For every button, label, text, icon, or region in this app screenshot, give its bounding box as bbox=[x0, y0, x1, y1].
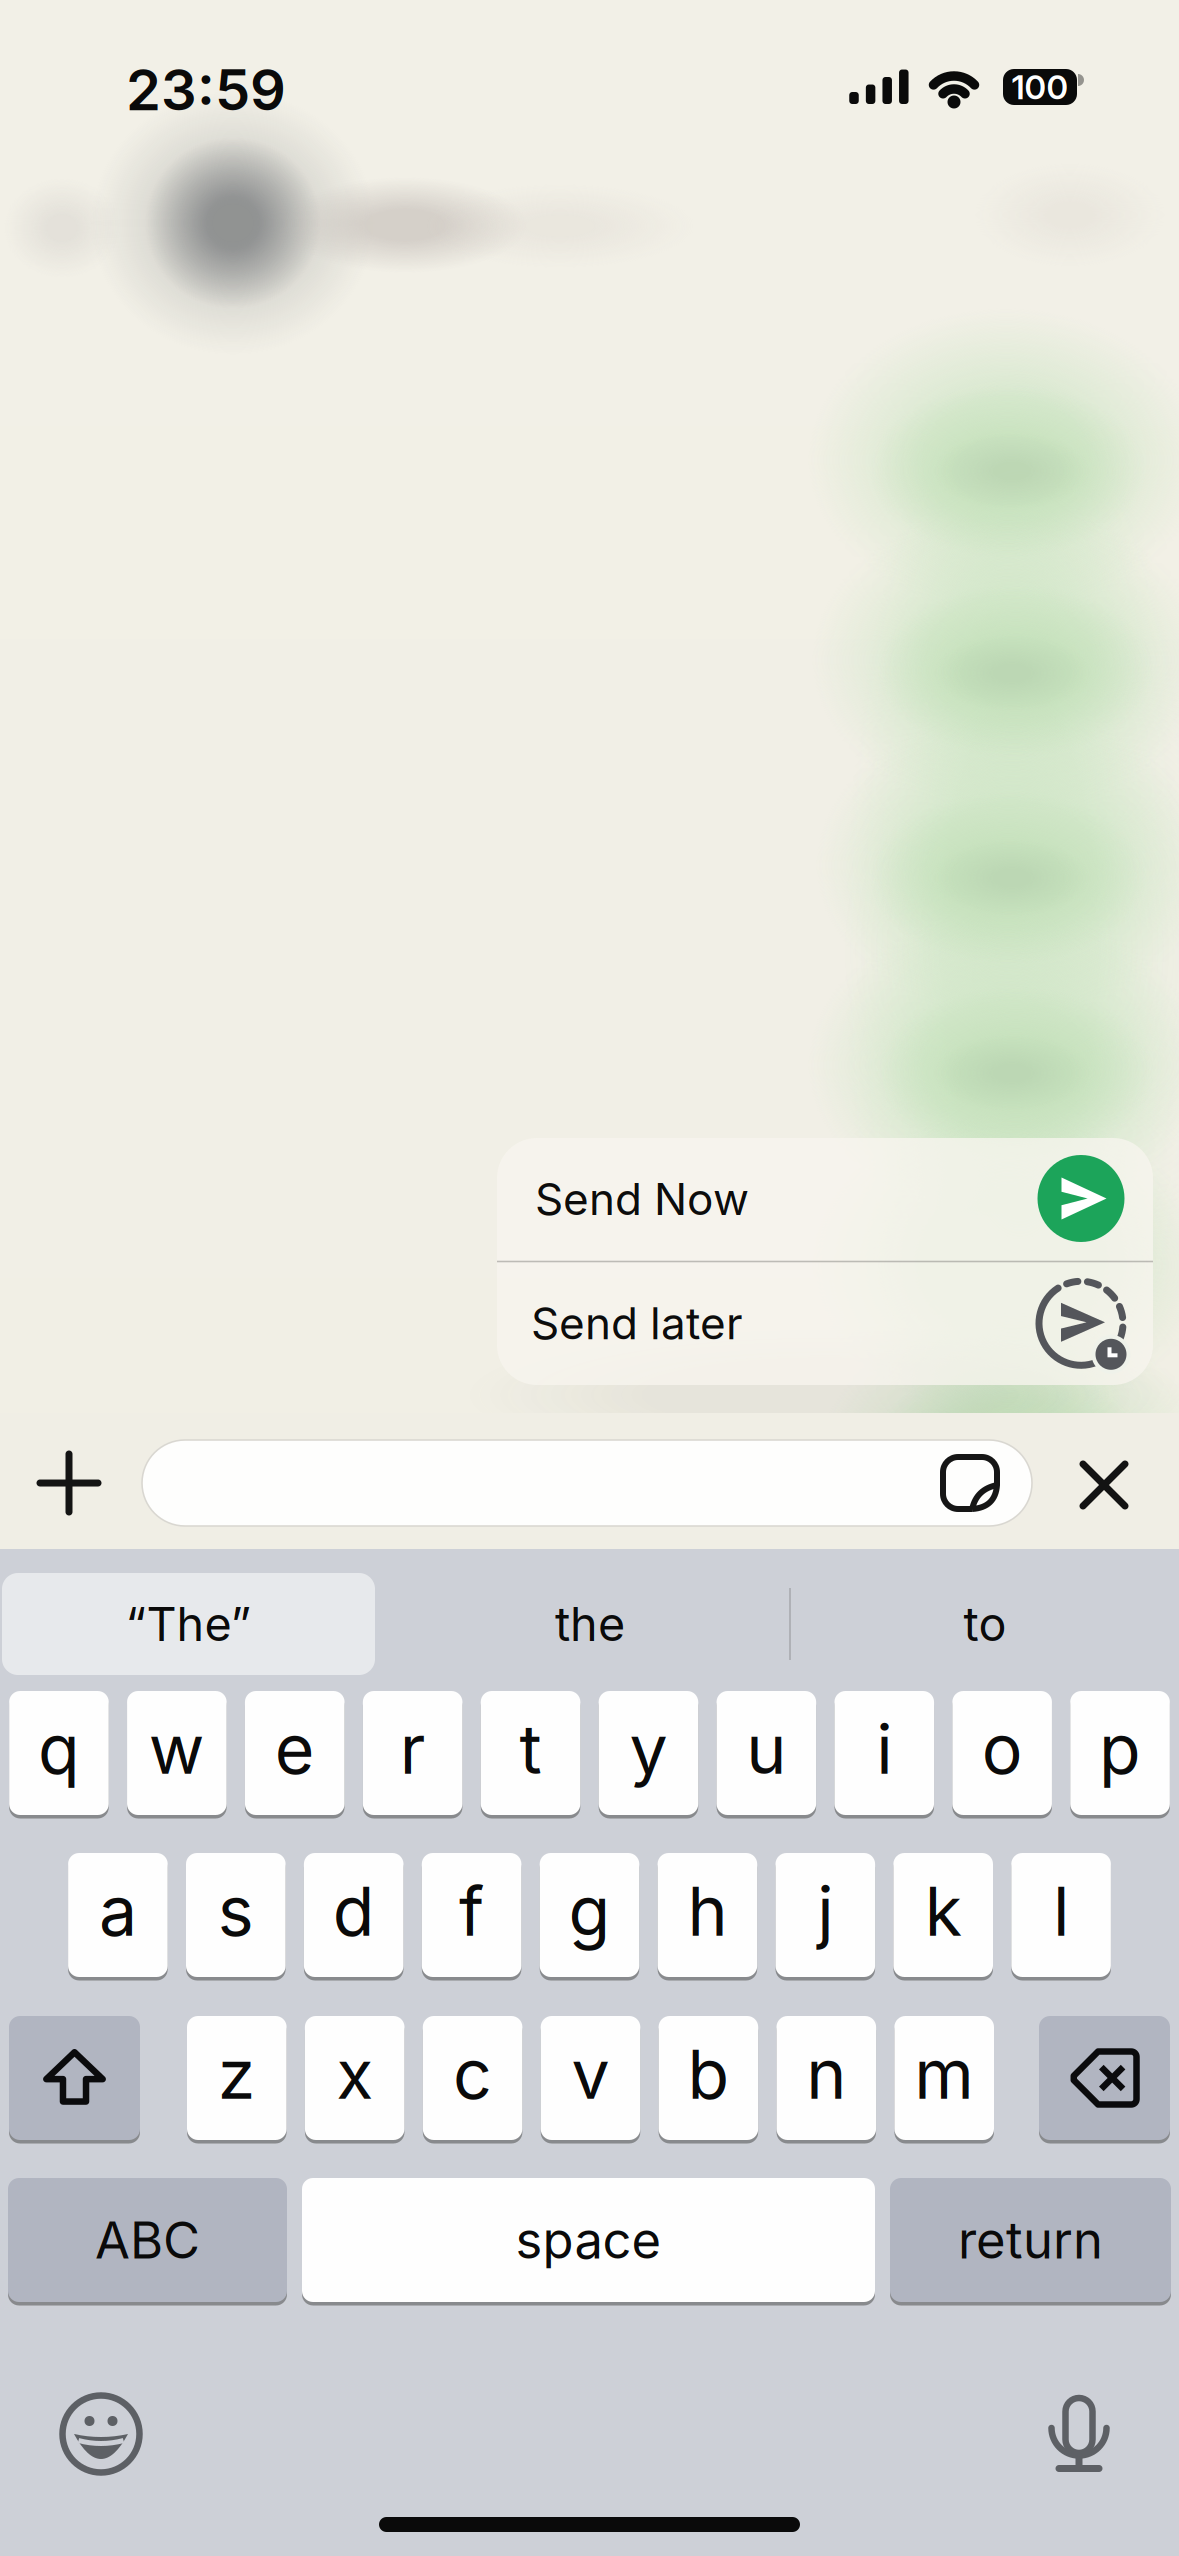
button[interactable]: d bbox=[304, 1853, 403, 1977]
button[interactable]: z bbox=[187, 2016, 287, 2140]
staticText: a bbox=[99, 1871, 137, 1951]
staticText: f bbox=[459, 1871, 484, 1951]
staticText: o bbox=[982, 1709, 1023, 1789]
staticText: 100 bbox=[1011, 67, 1068, 107]
staticText: t bbox=[519, 1709, 541, 1789]
staticText: s bbox=[218, 1871, 254, 1951]
staticText: j bbox=[817, 1871, 833, 1951]
button[interactable]: x bbox=[305, 2016, 404, 2140]
staticText: z bbox=[218, 2034, 256, 2114]
button[interactable]: o bbox=[952, 1691, 1052, 1815]
button[interactable]: r bbox=[363, 1691, 462, 1815]
button[interactable]: t bbox=[481, 1691, 580, 1815]
staticText: Send Now bbox=[535, 1173, 749, 1225]
button[interactable]: b bbox=[659, 2016, 758, 2140]
staticText: m bbox=[914, 2034, 974, 2114]
staticText: e bbox=[275, 1709, 315, 1789]
button[interactable]: u bbox=[716, 1691, 816, 1815]
button[interactable] bbox=[943, 1457, 997, 1509]
button[interactable]: n bbox=[776, 2016, 876, 2140]
button[interactable]: Send later bbox=[497, 1262, 1153, 1385]
button[interactable]: a bbox=[68, 1853, 168, 1977]
button[interactable]: the bbox=[440, 1573, 740, 1675]
button[interactable]: y bbox=[599, 1691, 698, 1815]
staticText: c bbox=[453, 2034, 492, 2114]
staticText: i bbox=[876, 1709, 892, 1789]
button[interactable]: k bbox=[893, 1853, 993, 1977]
staticText: d bbox=[333, 1871, 375, 1951]
button[interactable]: w bbox=[127, 1691, 227, 1815]
staticText: 23:59 bbox=[126, 57, 286, 123]
button[interactable]: l bbox=[1011, 1853, 1111, 1977]
button[interactable] bbox=[20, 1434, 118, 1532]
button[interactable]: q bbox=[9, 1691, 109, 1815]
staticText: l bbox=[1053, 1871, 1069, 1951]
button[interactable]: j bbox=[775, 1853, 875, 1977]
button[interactable]: f bbox=[422, 1853, 521, 1977]
staticText: y bbox=[629, 1709, 667, 1789]
button[interactable]: h bbox=[658, 1853, 757, 1977]
button[interactable]: return bbox=[890, 2178, 1171, 2302]
staticText: w bbox=[149, 1709, 205, 1789]
button[interactable]: ABC bbox=[8, 2178, 287, 2302]
staticText: x bbox=[336, 2034, 373, 2114]
staticText: k bbox=[925, 1871, 962, 1951]
staticText: ABC bbox=[95, 2210, 200, 2270]
button[interactable] bbox=[47, 2380, 155, 2488]
staticText: the bbox=[555, 1596, 625, 1652]
button[interactable]: c bbox=[423, 2016, 522, 2140]
button[interactable]: “The” bbox=[2, 1573, 375, 1675]
button[interactable] bbox=[1067, 1448, 1141, 1522]
button[interactable]: Send Now bbox=[497, 1138, 1153, 1261]
button[interactable]: m bbox=[894, 2016, 994, 2140]
staticText: b bbox=[687, 2034, 729, 2114]
button[interactable] bbox=[1039, 2016, 1170, 2140]
staticText: q bbox=[38, 1709, 80, 1789]
staticText: g bbox=[568, 1871, 610, 1951]
button[interactable] bbox=[142, 1440, 1032, 1526]
button[interactable]: space bbox=[302, 2178, 875, 2302]
button[interactable]: i bbox=[834, 1691, 934, 1815]
staticText: r bbox=[400, 1709, 426, 1789]
staticText: u bbox=[746, 1709, 786, 1789]
button[interactable]: s bbox=[186, 1853, 286, 1977]
staticText: v bbox=[571, 2034, 609, 2114]
button[interactable]: g bbox=[540, 1853, 639, 1977]
button[interactable]: e bbox=[245, 1691, 344, 1815]
staticText: return bbox=[958, 2210, 1103, 2270]
button[interactable]: to bbox=[835, 1573, 1135, 1675]
staticText: to bbox=[963, 1596, 1006, 1652]
staticText: Send later bbox=[531, 1297, 743, 1349]
button[interactable] bbox=[1025, 2383, 1133, 2493]
button[interactable]: p bbox=[1070, 1691, 1170, 1815]
staticText: p bbox=[1099, 1709, 1141, 1789]
button[interactable]: v bbox=[541, 2016, 640, 2140]
staticText: n bbox=[806, 2034, 846, 2114]
staticText: h bbox=[687, 1871, 727, 1951]
staticText: “The” bbox=[125, 1596, 251, 1652]
staticText: space bbox=[515, 2210, 661, 2270]
button[interactable] bbox=[9, 2016, 140, 2140]
